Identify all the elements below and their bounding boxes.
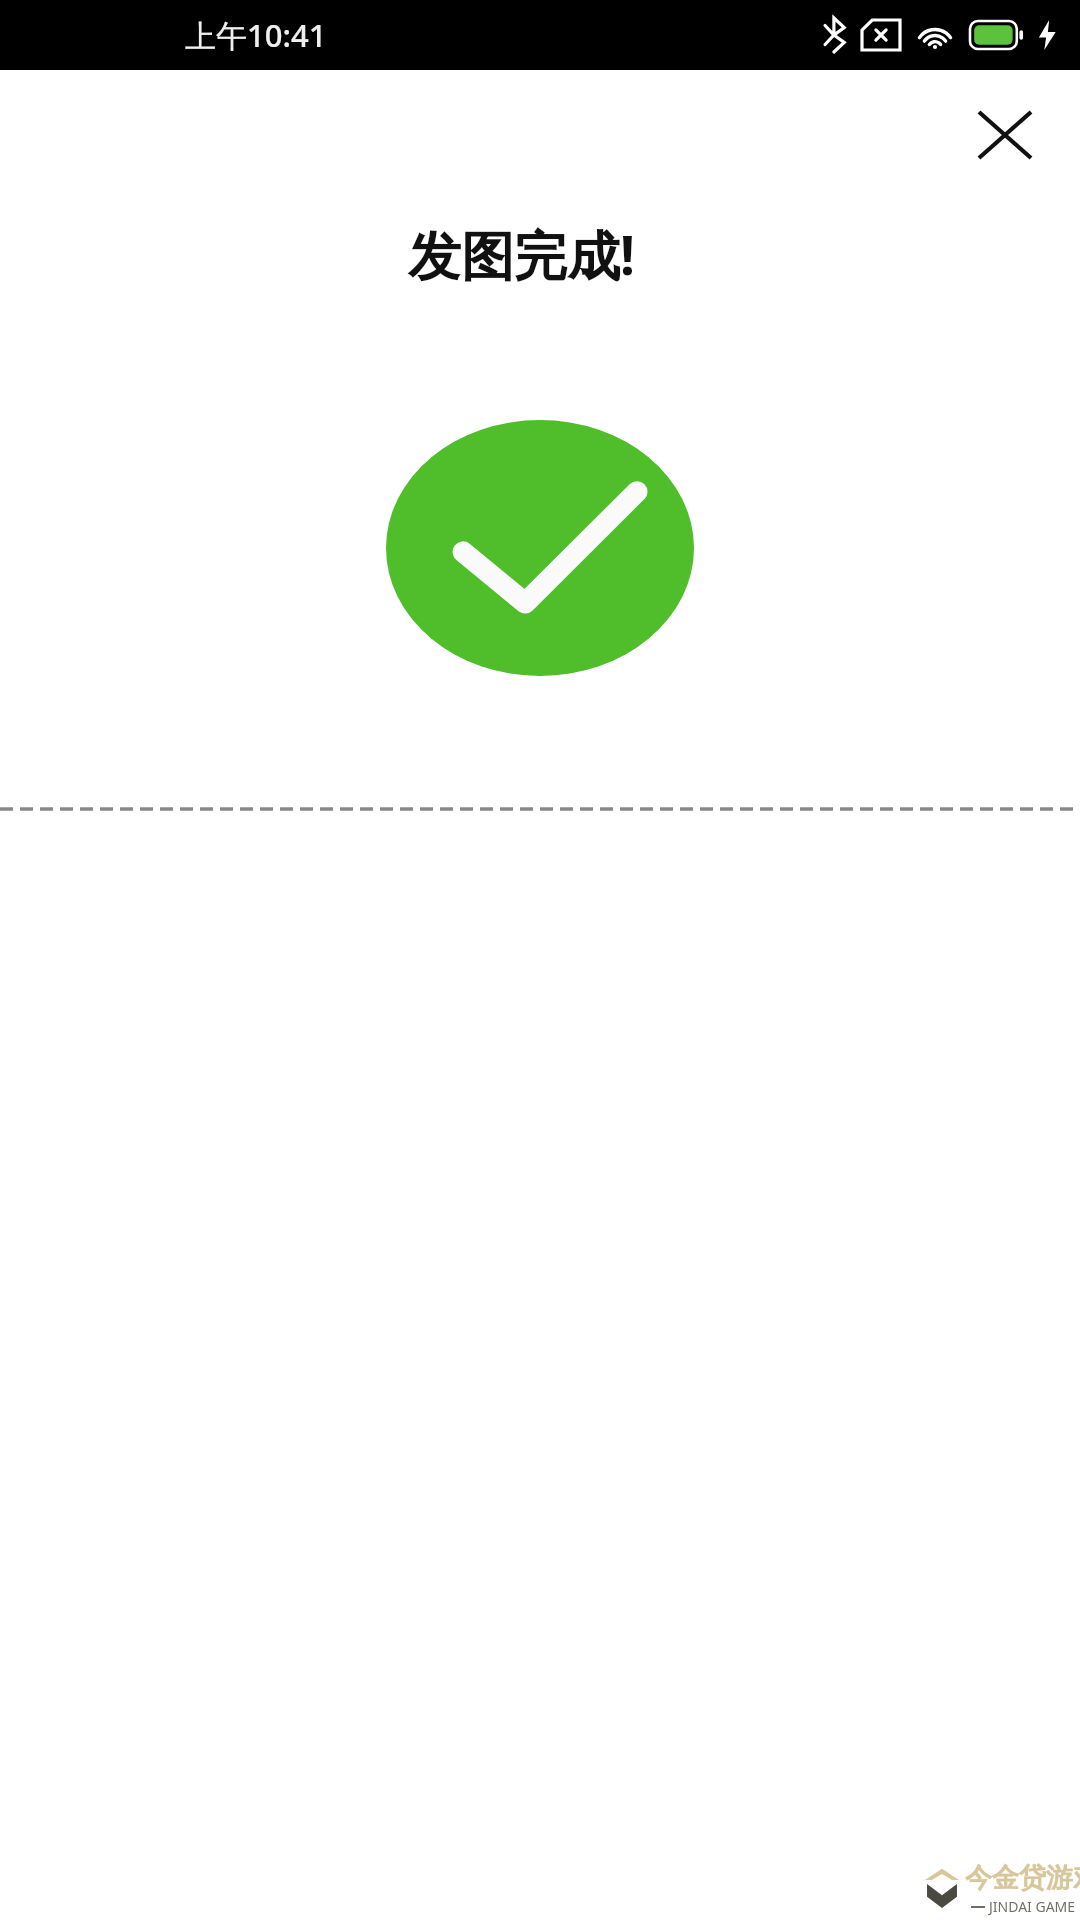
staticText: JINDAI GAME	[989, 1897, 1076, 1916]
staticText: 发图完成!	[408, 218, 635, 290]
staticText: 今金贷游戏	[965, 1861, 1080, 1895]
button[interactable]: Close	[950, 80, 1060, 190]
staticText: 上午10:41	[185, 14, 327, 56]
